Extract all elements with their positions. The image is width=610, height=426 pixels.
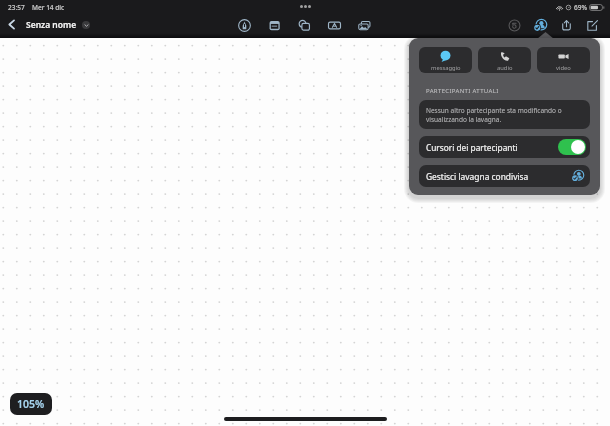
staticText: Senza nome: [26, 19, 77, 31]
button[interactable]: 105%: [10, 393, 52, 415]
button[interactable]: video: [537, 47, 590, 73]
button[interactable]: Text box: [327, 18, 342, 33]
button[interactable]: New whiteboard: [585, 18, 600, 33]
button[interactable]: Cursori dei partecipanti: [419, 136, 590, 158]
button[interactable]: audio: [478, 47, 531, 73]
staticText: PARTECIPANTI ATTUALI: [426, 87, 499, 95]
staticText: video: [556, 64, 571, 72]
button[interactable]: Undo: [507, 18, 522, 33]
staticText: 23:57: [8, 3, 25, 12]
button[interactable]: Markup pen: [237, 18, 252, 33]
button[interactable]: messaggio: [419, 47, 472, 73]
button[interactable]: Back: [5, 18, 92, 31]
staticText: 105%: [17, 397, 45, 411]
staticText: Nessun altro partecipante sta modificand…: [426, 106, 585, 124]
staticText: messaggio: [431, 64, 461, 72]
staticText: 69%: [574, 3, 587, 12]
button[interactable]: Share: [559, 18, 574, 33]
staticText: Mer 14 dic: [32, 3, 65, 12]
staticText: Cursori dei partecipanti: [426, 142, 518, 153]
button[interactable]: Sticky note: [267, 18, 282, 33]
button[interactable]: Shapes: [297, 18, 312, 33]
staticText: audio: [497, 64, 513, 72]
other: Back: [7, 18, 16, 31]
button[interactable]: Gestisci lavagna condivisa: [419, 165, 590, 187]
button[interactable]: Collaborate: [533, 18, 548, 33]
button[interactable]: Media: [357, 18, 372, 33]
staticText: Gestisci lavagna condivisa: [426, 171, 529, 182]
